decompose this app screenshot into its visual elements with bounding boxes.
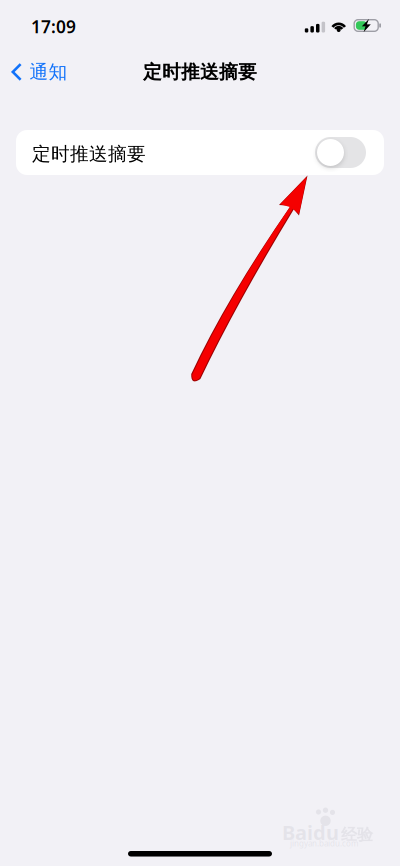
staticText: 通知 bbox=[29, 60, 67, 83]
staticText: Baidu bbox=[282, 819, 339, 846]
staticText: 定时推送摘要 bbox=[143, 60, 257, 83]
staticText: 定时推送摘要 bbox=[32, 142, 146, 165]
staticText: 经验 bbox=[341, 825, 373, 845]
staticText: 17:09 bbox=[31, 15, 76, 38]
button[interactable]: 定时推送摘要开关 bbox=[315, 137, 366, 168]
staticText: jingyan.baidu.com bbox=[290, 838, 358, 849]
button[interactable]: 定时推送摘要 bbox=[16, 130, 384, 175]
button[interactable]: 通知 bbox=[0, 50, 75, 94]
